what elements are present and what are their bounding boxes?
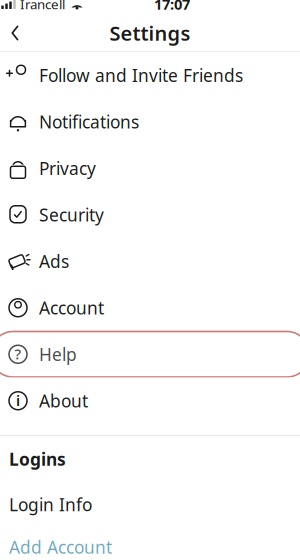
staticText: Login Info xyxy=(9,493,92,516)
button[interactable]: Logins xyxy=(0,436,300,482)
staticText: Follow and Invite Friends xyxy=(39,64,243,87)
staticText: 17:07 xyxy=(154,0,190,14)
staticText: ? xyxy=(14,344,21,363)
staticText: Logins xyxy=(9,447,66,470)
button[interactable]: Account xyxy=(0,284,300,331)
staticText: Add Account xyxy=(9,535,112,558)
staticText: Irancell xyxy=(20,0,65,13)
button[interactable]: Privacy xyxy=(0,145,300,191)
button[interactable]: i xyxy=(0,377,300,424)
staticText: i xyxy=(16,390,20,410)
button[interactable]: ? xyxy=(0,331,300,377)
staticText: Settings xyxy=(109,20,190,46)
button[interactable]: Security xyxy=(0,191,300,238)
button[interactable]: Follow and Invite Friends xyxy=(0,52,300,98)
button[interactable]: Ads xyxy=(0,238,300,284)
staticText: Ads xyxy=(39,250,69,273)
staticText: Notifications xyxy=(39,110,139,133)
staticText: Privacy xyxy=(39,157,96,180)
button[interactable]: Notifications xyxy=(0,98,300,145)
staticText: Security xyxy=(39,203,104,226)
button[interactable]: Add Account xyxy=(0,527,300,560)
staticText: Account xyxy=(39,296,104,319)
button[interactable]: Login Info xyxy=(0,482,300,527)
staticText: About xyxy=(39,389,88,412)
staticText: Help xyxy=(39,343,77,366)
button[interactable]: Back xyxy=(0,15,35,51)
